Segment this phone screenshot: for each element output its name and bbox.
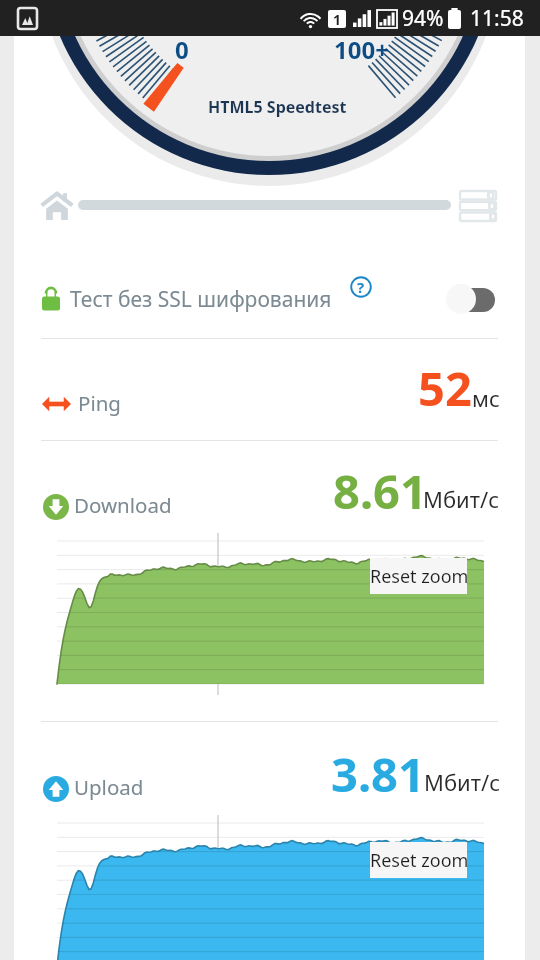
button[interactable]: Reset zoom xyxy=(370,842,467,878)
staticText: Reset zoom xyxy=(370,564,467,589)
staticText: мс xyxy=(472,383,500,413)
button[interactable]: Home xyxy=(41,192,73,220)
button[interactable]: Toggle SSL off xyxy=(444,282,498,316)
staticText: Upload xyxy=(74,773,144,801)
staticText: 52 xyxy=(418,356,472,420)
staticText: Мбит/с xyxy=(423,484,500,514)
button[interactable]: Reset zoom xyxy=(370,558,467,594)
staticText: Тест без SSL шифрования xyxy=(70,285,332,314)
staticText: 0 xyxy=(175,33,189,66)
staticText: 3.81 xyxy=(331,742,425,806)
button[interactable]: Help xyxy=(350,276,372,298)
staticText: Reset zoom xyxy=(370,848,467,873)
staticText: HTML5 Speedtest xyxy=(208,96,347,118)
button[interactable]: Progress xyxy=(78,200,451,210)
button[interactable]: Settings xyxy=(460,191,496,221)
staticText: 94% xyxy=(402,4,444,33)
staticText: 1 xyxy=(333,10,342,28)
staticText: 100+ xyxy=(334,33,389,66)
staticText: Мбит/с xyxy=(424,767,501,797)
staticText: Ping xyxy=(78,389,121,417)
staticText: 8.61 xyxy=(333,459,427,523)
staticText: ? xyxy=(357,277,365,297)
staticText: Download xyxy=(74,491,172,519)
staticText: 11:58 xyxy=(470,4,524,33)
